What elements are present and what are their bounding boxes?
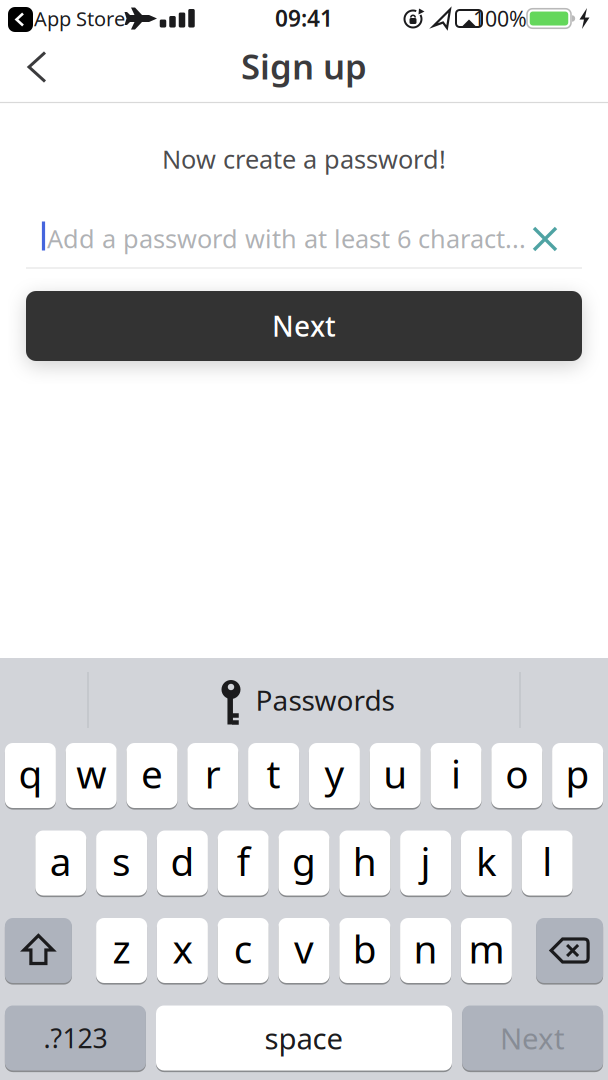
button[interactable]: Next <box>26 291 582 361</box>
button[interactable]: j <box>400 830 451 895</box>
button[interactable]: .?123 <box>5 1005 146 1070</box>
staticText: n <box>414 923 438 974</box>
button[interactable]: s <box>96 830 147 895</box>
staticText: z <box>113 923 131 974</box>
button[interactable]: g <box>278 830 329 895</box>
staticText: e <box>141 748 163 799</box>
staticText: m <box>468 923 504 974</box>
button[interactable]: d <box>157 830 208 895</box>
button[interactable]: y <box>309 743 360 808</box>
staticText: space <box>264 1018 343 1057</box>
button[interactable]: b <box>339 918 390 983</box>
staticText: Next <box>272 307 336 345</box>
button[interactable]: Delete <box>536 918 603 983</box>
button[interactable]: Shift <box>5 918 72 983</box>
button[interactable]: f <box>218 830 269 895</box>
staticText: f <box>237 835 250 887</box>
staticText: w <box>76 748 106 799</box>
button[interactable]: u <box>370 743 421 808</box>
staticText: h <box>353 835 377 887</box>
button[interactable]: Next <box>462 1005 603 1070</box>
button[interactable]: x <box>157 918 208 983</box>
staticText: x <box>172 923 192 974</box>
staticText: Passwords <box>255 681 394 719</box>
staticText: t <box>267 748 281 799</box>
button[interactable]: z <box>96 918 147 983</box>
staticText: Now create a password! <box>162 142 446 176</box>
button[interactable]: space <box>156 1005 452 1070</box>
staticText: .?123 <box>43 1020 107 1056</box>
staticText: b <box>353 923 377 974</box>
staticText: q <box>18 748 42 799</box>
staticText: a <box>50 835 72 887</box>
button[interactable]: v <box>278 918 329 983</box>
staticText: p <box>566 748 590 799</box>
staticText: u <box>383 748 407 799</box>
staticText: j <box>421 835 431 887</box>
button[interactable]: a <box>35 830 86 895</box>
button[interactable]: w <box>66 743 117 808</box>
button[interactable]: r <box>187 743 238 808</box>
staticText: g <box>292 835 316 887</box>
staticText: s <box>112 835 131 887</box>
button[interactable]: Passwords <box>194 668 394 732</box>
button[interactable]: n <box>400 918 451 983</box>
staticText: c <box>234 923 253 974</box>
staticText: k <box>476 835 497 887</box>
staticText: r <box>205 748 221 799</box>
staticText: Next <box>500 1018 565 1057</box>
button[interactable]: c <box>218 918 269 983</box>
staticText: 09:41 <box>275 3 333 33</box>
button[interactable]: Clear text <box>523 217 567 261</box>
button[interactable]: k <box>461 830 512 895</box>
button[interactable]: m <box>461 918 512 983</box>
button[interactable]: t <box>248 743 299 808</box>
staticText: l <box>542 835 552 887</box>
staticText: 100% <box>473 4 527 33</box>
button[interactable]: e <box>126 743 177 808</box>
staticText: o <box>505 748 528 799</box>
staticText: d <box>170 835 194 887</box>
button[interactable]: App Store <box>8 0 138 39</box>
staticText: i <box>451 748 461 799</box>
button[interactable]: o <box>491 743 542 808</box>
button[interactable]: p <box>552 743 603 808</box>
staticText: Add a password with at least 6 charact..… <box>47 222 526 255</box>
staticText: v <box>294 923 314 974</box>
staticText: Sign up <box>241 43 367 89</box>
button[interactable]: h <box>339 830 390 895</box>
button[interactable]: Back <box>15 46 59 88</box>
button[interactable]: i <box>430 743 481 808</box>
button[interactable]: l <box>522 830 573 895</box>
staticText: App Store <box>34 5 125 32</box>
staticText: y <box>324 748 344 799</box>
button[interactable]: q <box>5 743 56 808</box>
